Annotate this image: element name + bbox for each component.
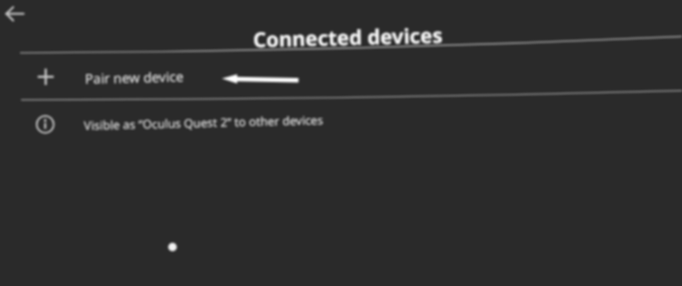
staticText: Pair new device bbox=[85, 67, 184, 88]
staticText: Connected devices bbox=[253, 21, 443, 53]
staticText: Visible as “Oculus Quest 2” to other dev… bbox=[84, 111, 324, 133]
button[interactable]: Pair new device bbox=[0, 54, 682, 101]
button[interactable]: Back bbox=[0, 0, 30, 30]
